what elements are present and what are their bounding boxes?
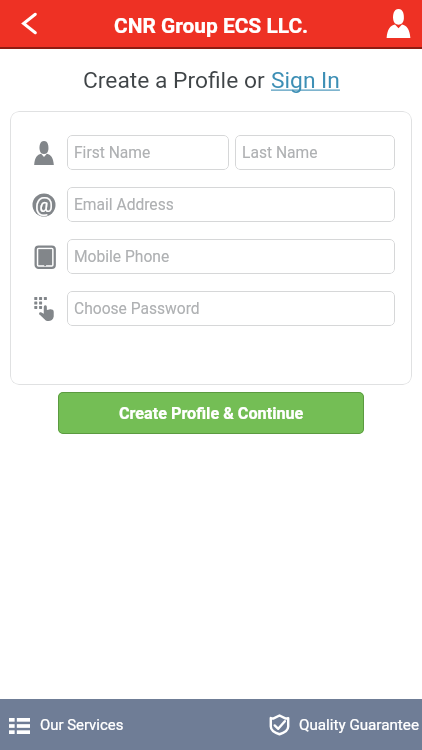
staticText: Mobile Phone bbox=[74, 248, 170, 266]
staticText: First Name bbox=[74, 144, 151, 162]
button[interactable]: Email Address bbox=[67, 187, 395, 222]
staticText: Choose Password bbox=[74, 300, 200, 318]
button[interactable]: Our Services bbox=[0, 699, 211, 750]
staticText: Our Services bbox=[40, 716, 124, 733]
staticText: Create Profile & Continue bbox=[119, 404, 304, 423]
staticText: Last Name bbox=[242, 144, 318, 162]
button[interactable]: First Name bbox=[67, 135, 229, 170]
staticText: Quality Guarantee bbox=[299, 716, 419, 734]
staticText: Create a Profile or bbox=[83, 67, 271, 94]
button[interactable]: Back bbox=[0, 0, 52, 47]
button[interactable]: Sign In bbox=[271, 67, 340, 94]
button[interactable]: Choose Password bbox=[67, 291, 395, 326]
staticText: CNR Group ECS LLC. bbox=[114, 14, 309, 38]
staticText: @ bbox=[35, 193, 53, 216]
button[interactable]: Account bbox=[374, 0, 422, 47]
button[interactable]: Mobile Phone bbox=[67, 239, 395, 274]
staticText: Email Address bbox=[74, 196, 174, 214]
button[interactable]: Last Name bbox=[235, 135, 395, 170]
button[interactable]: Create Profile & Continue bbox=[58, 392, 364, 434]
button[interactable]: Quality Guarantee bbox=[211, 699, 422, 750]
